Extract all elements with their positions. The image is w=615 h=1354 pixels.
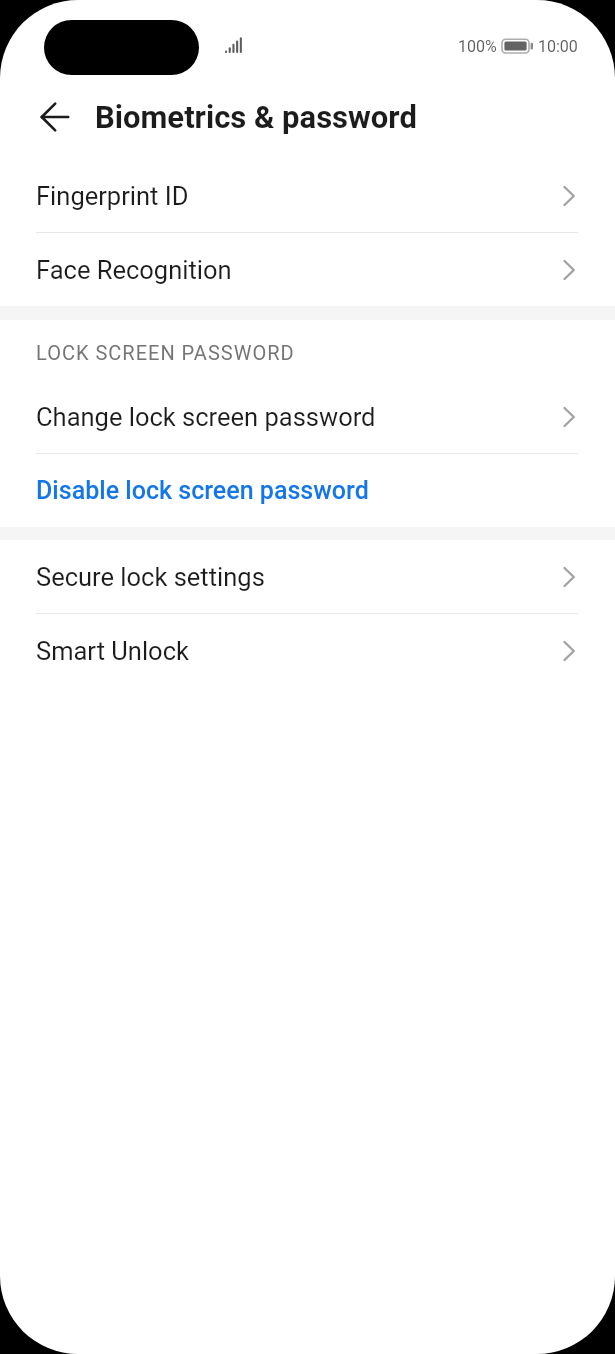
button[interactable]: Smart Unlock [0,614,615,687]
button[interactable]: Disable lock screen password [0,454,615,527]
staticText: Biometrics & password [95,99,417,135]
button[interactable]: Face Recognition [0,233,615,306]
staticText: Secure lock settings [36,562,265,592]
button[interactable]: Fingerprint ID [0,159,615,232]
staticText: Disable lock screen password [36,476,369,505]
staticText: Smart Unlock [36,636,189,666]
button[interactable]: Secure lock settings [0,540,615,613]
staticText: LOCK SCREEN PASSWORD [36,341,295,364]
staticText: 10:00 [538,37,578,56]
button[interactable]: Change lock screen password [0,380,615,453]
staticText: Face Recognition [36,255,232,285]
staticText: Change lock screen password [36,402,376,432]
button[interactable] [41,103,69,131]
staticText: 100% [458,37,497,56]
staticText: Fingerprint ID [36,181,189,211]
